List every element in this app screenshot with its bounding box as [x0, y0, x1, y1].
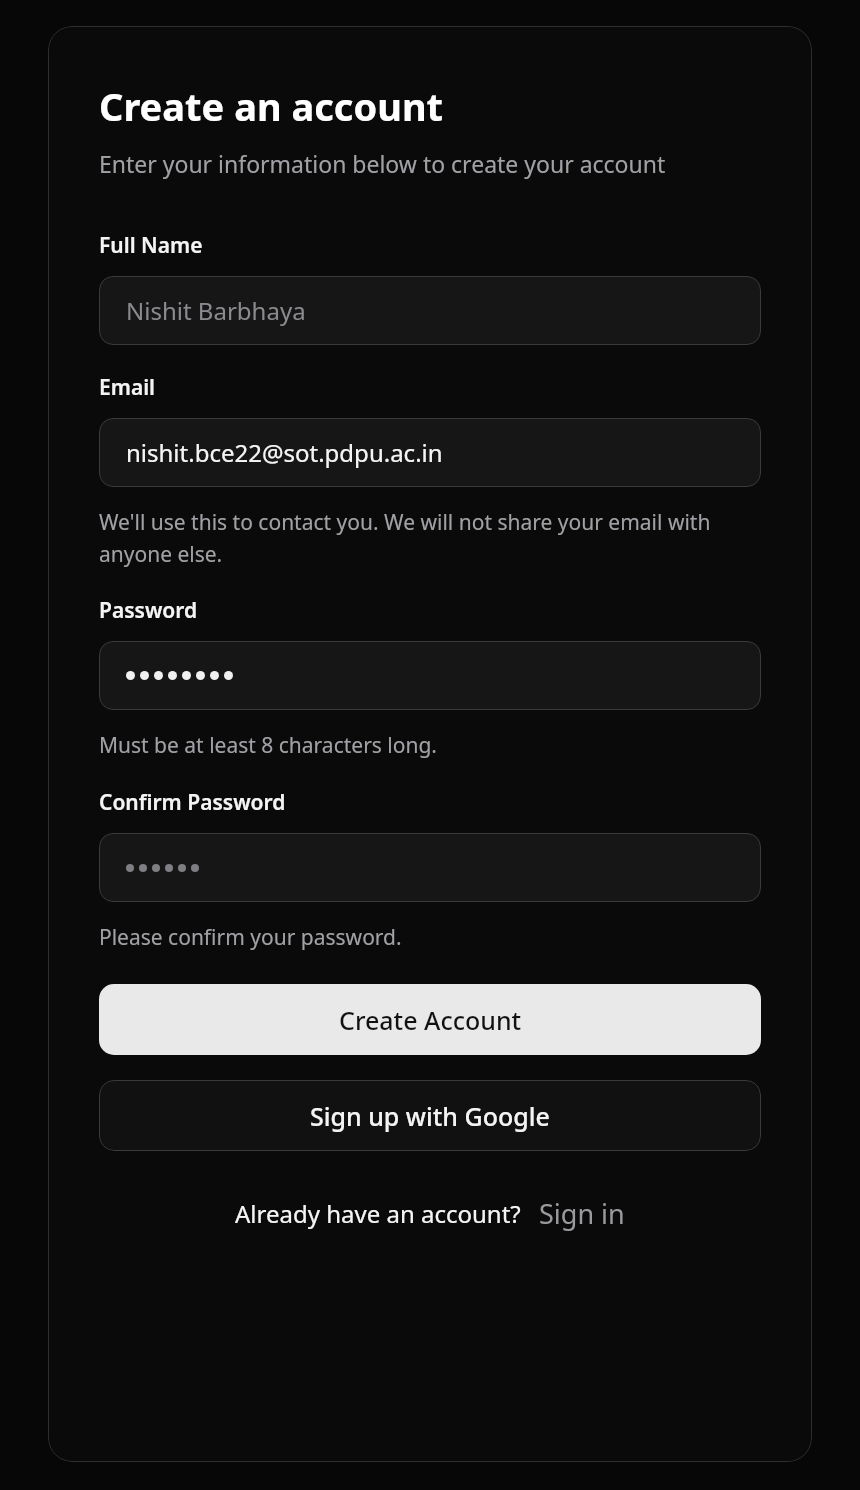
- staticText: Enter your information below to create y…: [99, 148, 666, 179]
- staticText: Create an account: [99, 80, 444, 132]
- staticText: Email: [99, 373, 156, 402]
- staticText: Already have an account?: [235, 1197, 521, 1230]
- button[interactable]: Sign in: [539, 1195, 625, 1232]
- staticText: Full Name: [99, 231, 203, 260]
- staticText: Create Account: [339, 1003, 522, 1037]
- button[interactable]: [99, 641, 761, 710]
- staticText: Sign up with Google: [310, 1099, 550, 1133]
- staticText: Confirm Password: [99, 788, 286, 817]
- button[interactable]: Create Account: [99, 984, 761, 1055]
- button[interactable]: Nishit Barbhaya: [99, 276, 761, 345]
- button[interactable]: Sign up with Google: [99, 1080, 761, 1151]
- staticText: Must be at least 8 characters long.: [99, 731, 437, 760]
- staticText: nishit.bce22@sot.pdpu.ac.in: [126, 436, 443, 469]
- button[interactable]: [99, 833, 761, 902]
- staticText: Please confirm your password.: [99, 923, 402, 952]
- button[interactable]: nishit.bce22@sot.pdpu.ac.in: [99, 418, 761, 487]
- staticText: We'll use this to contact you. We will n…: [99, 508, 761, 568]
- staticText: Password: [99, 596, 198, 625]
- staticText: Sign in: [539, 1195, 625, 1232]
- staticText: Nishit Barbhaya: [126, 294, 306, 327]
